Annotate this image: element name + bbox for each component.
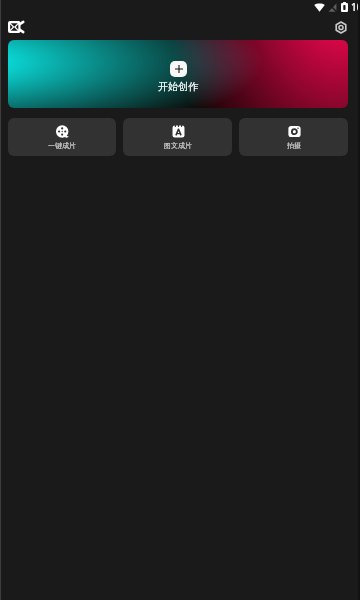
staticText: 图文成片 — [164, 141, 192, 150]
button[interactable]: 开始创作 — [8, 40, 348, 108]
staticText: 开始创作 — [158, 80, 198, 93]
staticText: 一键成片 — [48, 141, 76, 150]
button[interactable]: 一键成片 — [8, 118, 116, 156]
staticText: 100 — [351, 0, 360, 14]
button[interactable]: 拍摄 — [239, 118, 348, 156]
button[interactable]: CapCut — [8, 21, 24, 33]
button[interactable]: Settings — [335, 21, 347, 34]
staticText: 拍摄 — [287, 141, 301, 150]
button[interactable]: 图文成片 — [123, 118, 232, 156]
